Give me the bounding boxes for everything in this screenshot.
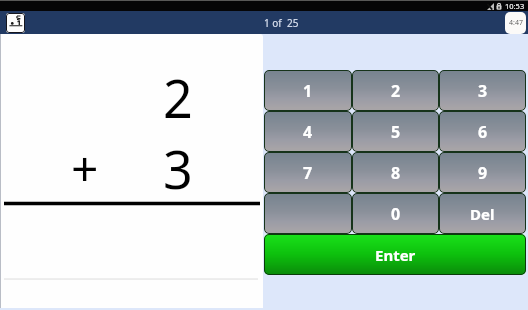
- staticText: 9: [478, 162, 488, 184]
- button[interactable]: 4: [264, 111, 352, 152]
- button[interactable]: Enter: [264, 234, 526, 275]
- button[interactable]: blank key: [264, 193, 352, 234]
- staticText: +: [71, 135, 99, 200]
- staticText: 3: [163, 133, 193, 204]
- button[interactable]: 5: [352, 111, 439, 152]
- staticText: 5: [391, 121, 401, 143]
- staticText: 4: [303, 121, 313, 143]
- button[interactable]: 8: [352, 152, 439, 193]
- staticText: 8: [391, 162, 401, 184]
- button[interactable]: 2: [352, 70, 439, 111]
- button[interactable]: 9: [439, 152, 526, 193]
- staticText: 4:47: [509, 18, 523, 28]
- staticText: 10:53: [505, 1, 525, 11]
- staticText: Enter: [375, 245, 416, 265]
- button[interactable]: Del: [439, 193, 526, 234]
- button[interactable]: 6: [439, 111, 526, 152]
- button[interactable]: 1: [264, 70, 352, 111]
- staticText: Del: [470, 204, 495, 224]
- button[interactable]: 3: [439, 70, 526, 111]
- staticText: 2: [163, 62, 193, 133]
- staticText: 7: [303, 162, 313, 184]
- button[interactable]: 7: [264, 152, 352, 193]
- button[interactable]: 0: [352, 193, 439, 234]
- staticText: 0: [391, 203, 401, 225]
- button[interactable]: App home: [6, 13, 25, 33]
- staticText: 3: [478, 80, 488, 102]
- staticText: 1: [303, 80, 313, 102]
- staticText: 6: [478, 121, 488, 143]
- staticText: 1 of 25: [264, 16, 299, 30]
- staticText: 2: [391, 80, 401, 102]
- button[interactable]: 4:47: [505, 12, 526, 34]
